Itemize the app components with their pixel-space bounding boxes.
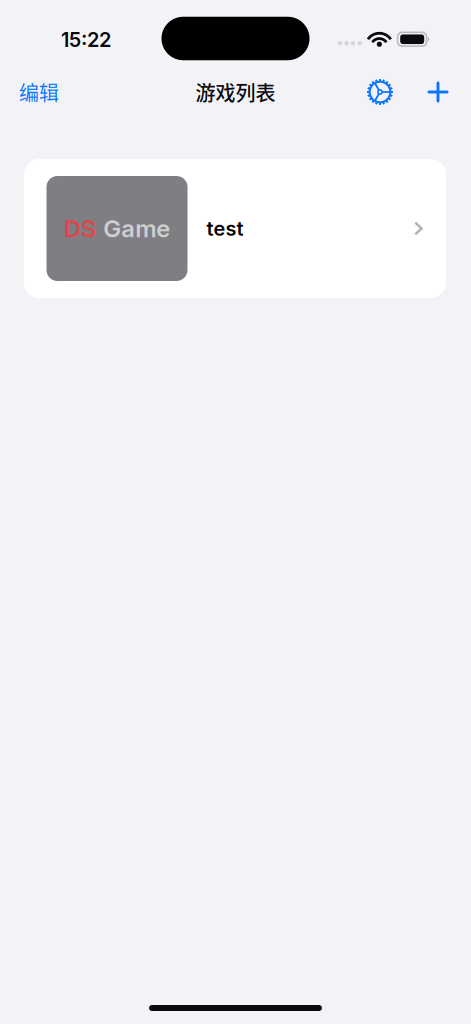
button[interactable]: Settings bbox=[358, 70, 402, 114]
button[interactable]: DS bbox=[24, 159, 446, 298]
staticText: 编辑 bbox=[19, 77, 59, 106]
button[interactable]: 编辑 bbox=[0, 70, 68, 114]
button[interactable]: Add bbox=[416, 70, 471, 114]
staticText: 游戏列表 bbox=[195, 77, 275, 106]
staticText: DS bbox=[64, 214, 97, 243]
staticText: test bbox=[206, 216, 243, 241]
staticText: Game bbox=[103, 214, 170, 243]
staticText: 15:22 bbox=[61, 28, 111, 52]
